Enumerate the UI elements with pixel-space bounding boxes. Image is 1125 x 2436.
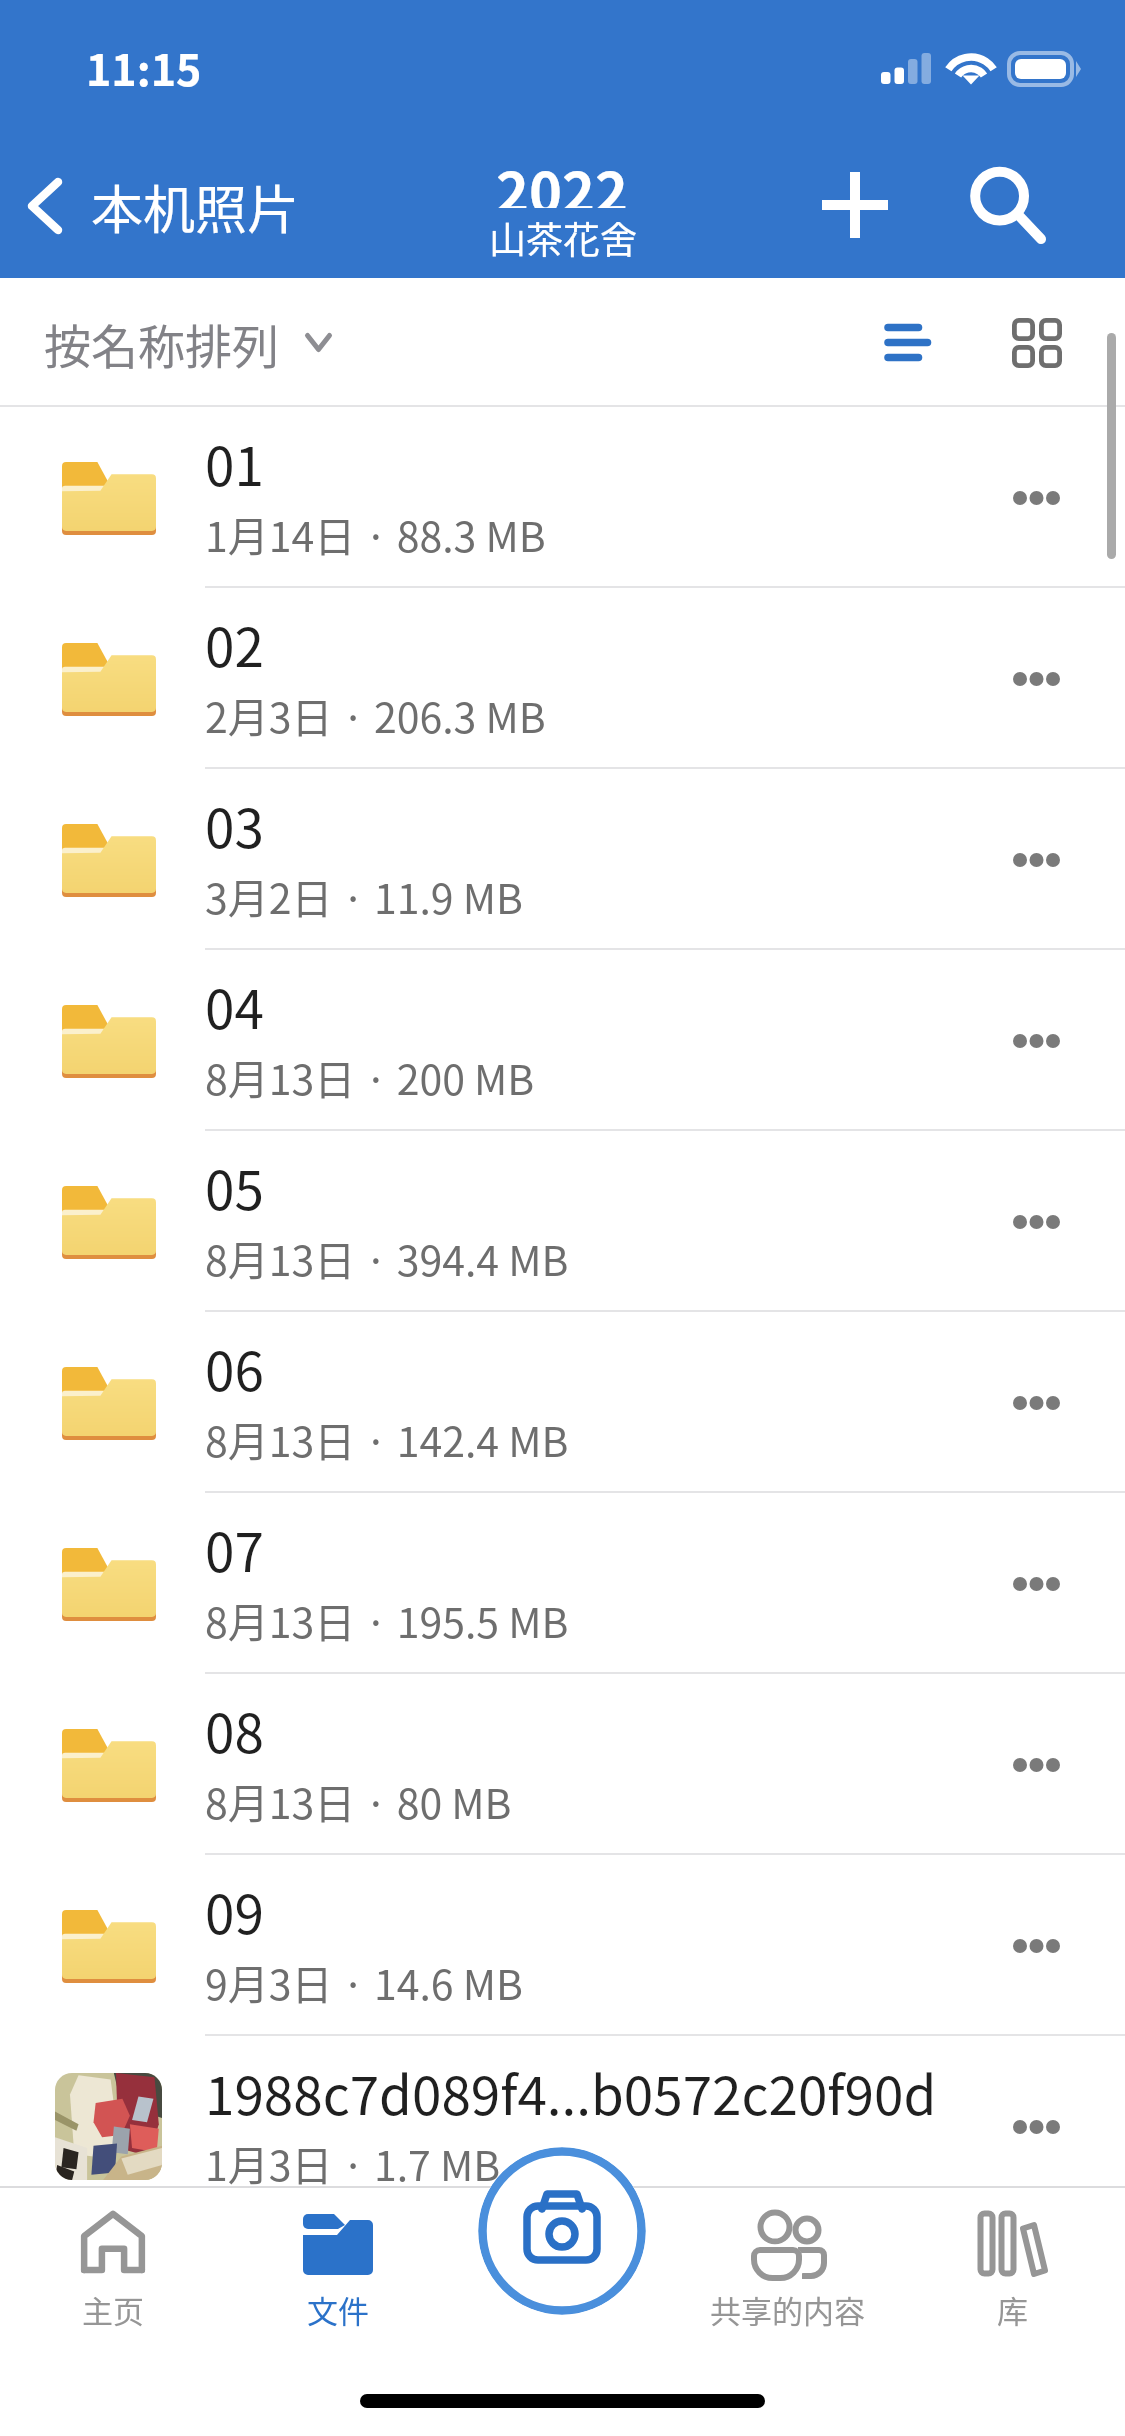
button[interactable]: 04 [0,950,1125,1131]
button[interactable]: 05 [0,1131,1125,1312]
staticText: 02 [205,606,264,683]
button[interactable]: Grid view [977,278,1097,407]
button[interactable]: More options [948,588,1125,769]
staticText: 04 [205,968,264,1045]
staticText: 05 [205,1149,264,1226]
staticText: 06 [205,1330,264,1407]
button[interactable]: 本机照片 [14,149,320,263]
staticText: 08 [205,1692,264,1769]
staticText: 8月13日 · 195.5 MB [205,1590,569,1649]
staticText: 共享的内容 [710,2287,865,2332]
button[interactable]: 主页 [0,2186,225,2366]
button[interactable]: 02 [0,588,1125,769]
button[interactable]: More options [948,950,1125,1131]
staticText: 2月3日 · 206.3 MB [205,685,546,744]
staticText: 1月14日 · 88.3 MB [205,504,546,563]
button[interactable]: Camera [478,2147,646,2315]
button[interactable]: More options [948,1312,1125,1493]
staticText: 3月2日 · 11.9 MB [205,866,523,925]
button[interactable]: More options [948,1131,1125,1312]
staticText: 文件 [307,2287,369,2332]
staticText: 山茶花舍 [489,211,637,261]
staticText: 1988c7d089f4...b0572c20f90d [205,2054,937,2131]
button[interactable]: More options [948,2036,1125,2186]
staticText: 11:15 [86,36,202,98]
staticText: 09 [205,1873,264,1950]
staticText: 8月13日 · 394.4 MB [205,1228,569,1287]
button[interactable]: 1988c7d089f4...b0572c20f90d [0,2036,1125,2186]
button[interactable]: 共享的内容 [675,2186,900,2366]
staticText: 9月3日 · 14.6 MB [205,1952,523,2011]
button[interactable]: 06 [0,1312,1125,1493]
staticText: 8月13日 · 80 MB [205,1771,512,1830]
button[interactable]: 按名称排列 [24,278,352,407]
button[interactable]: 01 [0,407,1125,588]
button[interactable]: More options [948,1493,1125,1674]
staticText: 库 [997,2287,1028,2332]
staticText: 03 [205,787,264,864]
button[interactable]: More options [948,1674,1125,1855]
button[interactable]: Add [790,140,920,270]
button[interactable]: List view [846,278,966,407]
staticText: 2022 [496,148,629,208]
button[interactable]: More options [948,769,1125,950]
button[interactable]: Search [942,140,1072,270]
staticText: 1月3日 · 1.7 MB [205,2133,501,2186]
staticText: 01 [205,425,264,502]
button[interactable]: More options [948,407,1125,588]
button[interactable]: 09 [0,1855,1125,2036]
button[interactable]: 03 [0,769,1125,950]
button[interactable]: 文件 [225,2186,450,2366]
staticText: 07 [205,1511,264,1588]
button[interactable]: 07 [0,1493,1125,1674]
button[interactable]: 库 [900,2186,1125,2366]
button[interactable]: More options [948,1855,1125,2036]
button[interactable]: 08 [0,1674,1125,1855]
staticText: 按名称排列 [44,309,279,377]
staticText: 本机照片 [91,169,300,244]
staticText: 主页 [82,2287,144,2332]
staticText: 8月13日 · 142.4 MB [205,1409,569,1468]
staticText: 8月13日 · 200 MB [205,1047,535,1106]
